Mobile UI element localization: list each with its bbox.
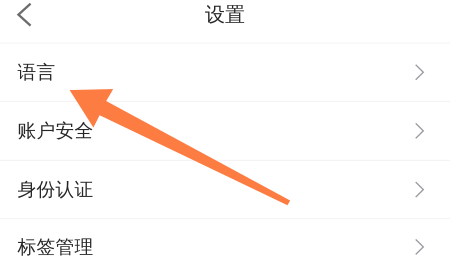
staticText: 设置 <box>205 2 245 27</box>
button[interactable]: 语言 <box>0 44 450 101</box>
button[interactable]: 账户安全 <box>0 102 450 160</box>
button[interactable]: 身份认证 <box>0 161 450 218</box>
button[interactable]: Back <box>0 0 46 30</box>
staticText: 语言 <box>17 61 55 84</box>
staticText: 账户安全 <box>17 119 93 142</box>
staticText: 身份认证 <box>17 178 93 201</box>
staticText: 标签管理 <box>17 235 93 258</box>
button[interactable]: 标签管理 <box>0 219 450 267</box>
